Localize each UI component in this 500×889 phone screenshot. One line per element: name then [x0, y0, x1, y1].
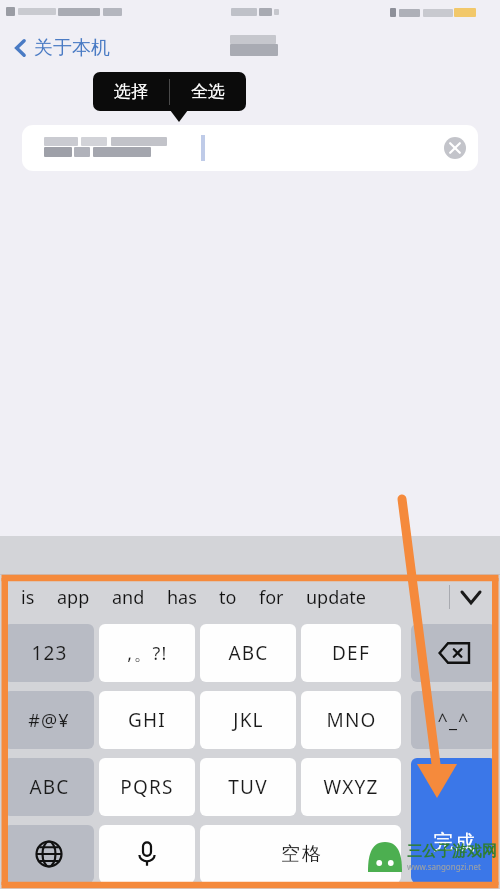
- button[interactable]: 完成: [411, 758, 496, 883]
- staticText: JKL: [233, 707, 264, 733]
- staticText: 空格: [280, 842, 322, 866]
- staticText: has: [167, 585, 197, 610]
- staticText: PQRS: [120, 774, 174, 800]
- button[interactable]: Hide keyboard: [450, 575, 492, 619]
- staticText: DEF: [332, 640, 370, 666]
- button[interactable]: Switch language: [4, 825, 94, 883]
- staticText: ,。?!: [127, 641, 168, 666]
- staticText: #@¥: [28, 708, 70, 733]
- button[interactable]: 全选: [170, 72, 246, 111]
- staticText: to: [219, 585, 237, 610]
- staticText: 完成: [432, 830, 476, 855]
- staticText: update: [306, 585, 367, 610]
- staticText: WXYZ: [323, 774, 379, 800]
- button[interactable]: update: [295, 579, 378, 616]
- staticText: 选择: [114, 81, 148, 102]
- button[interactable]: ^_^: [411, 691, 496, 749]
- button[interactable]: 关于本机: [10, 33, 114, 63]
- button[interactable]: #@¥: [4, 691, 94, 749]
- button[interactable]: PQRS: [99, 758, 195, 816]
- button[interactable]: to: [208, 579, 248, 616]
- button[interactable]: ,。?!: [99, 624, 195, 682]
- staticText: GHI: [128, 707, 166, 733]
- button[interactable]: is: [10, 579, 46, 616]
- button[interactable]: MNO: [301, 691, 401, 749]
- staticText: MNO: [326, 707, 377, 733]
- button[interactable]: and: [101, 579, 156, 616]
- button[interactable]: Delete: [411, 624, 496, 682]
- staticText: and: [112, 585, 145, 610]
- button[interactable]: Clear text: [444, 137, 466, 159]
- button[interactable]: app: [46, 579, 101, 616]
- button[interactable]: Clear text: [22, 125, 478, 171]
- button[interactable]: DEF: [301, 624, 401, 682]
- button[interactable]: WXYZ: [301, 758, 401, 816]
- staticText: 关于本机: [34, 36, 110, 60]
- button[interactable]: ABC: [4, 758, 94, 816]
- staticText: ABC: [228, 640, 269, 666]
- staticText: TUV: [228, 774, 268, 800]
- staticText: 123: [31, 640, 68, 666]
- button[interactable]: 选择: [93, 72, 169, 111]
- button[interactable]: 123: [4, 624, 94, 682]
- staticText: app: [57, 585, 90, 610]
- staticText: www.sangongzi.net: [407, 861, 481, 872]
- button[interactable]: TUV: [200, 758, 296, 816]
- staticText: ^_^: [437, 708, 470, 733]
- button[interactable]: Voice input: [99, 825, 195, 883]
- staticText: ABC: [29, 774, 70, 800]
- button[interactable]: JKL: [200, 691, 296, 749]
- button[interactable]: ABC: [200, 624, 296, 682]
- staticText: is: [21, 585, 35, 610]
- button[interactable]: for: [248, 579, 295, 616]
- staticText: 全选: [191, 81, 225, 102]
- staticText: 三公子游戏网: [407, 842, 497, 861]
- button[interactable]: has: [156, 579, 208, 616]
- button[interactable]: GHI: [99, 691, 195, 749]
- staticText: for: [259, 585, 284, 610]
- button[interactable]: 空格: [200, 825, 401, 883]
